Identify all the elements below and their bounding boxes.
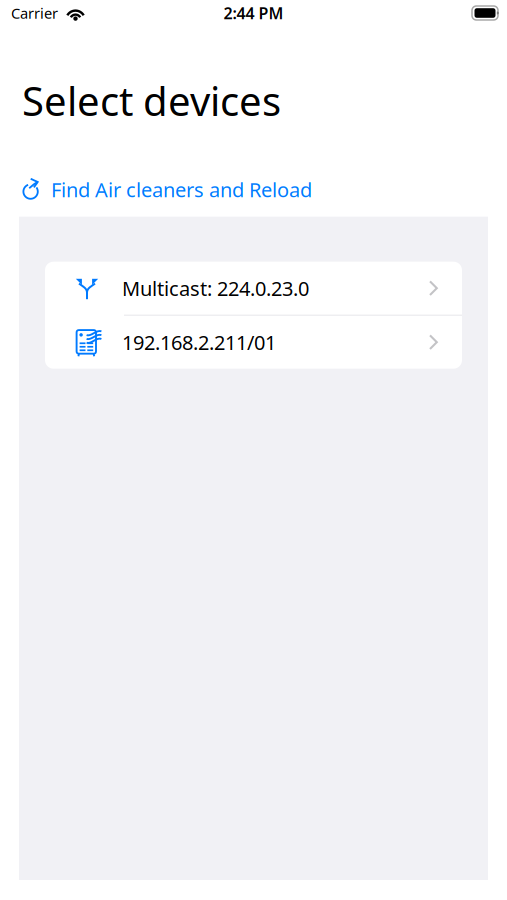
staticText: Carrier [11, 3, 58, 23]
staticText: 192.168.2.211/01 [122, 329, 276, 355]
button[interactable]: Find Air cleaners and Reload [0, 127, 507, 217]
button[interactable]: 192.168.2.211/01 [45, 316, 462, 369]
staticText: Multicast: 224.0.23.0 [122, 275, 309, 301]
staticText: Find Air cleaners and Reload [51, 176, 312, 203]
staticText: Select devices [22, 74, 281, 127]
button[interactable]: Multicast: 224.0.23.0 [45, 262, 462, 315]
staticText: 2:44 PM [223, 2, 283, 24]
